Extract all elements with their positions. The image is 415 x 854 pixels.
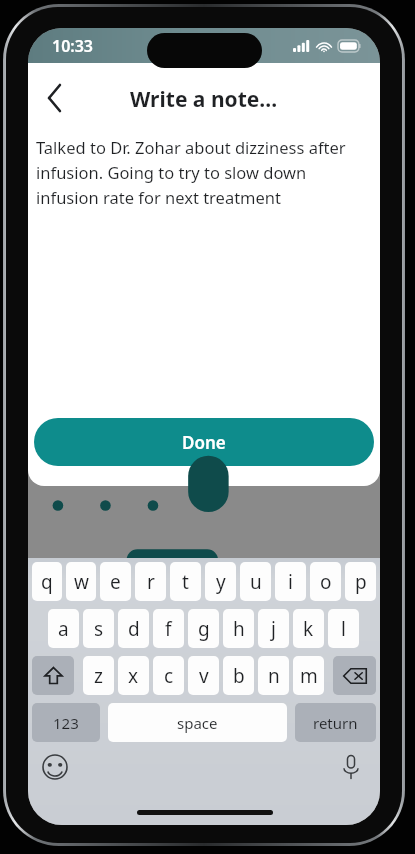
staticText: o <box>320 569 332 595</box>
button[interactable]: t <box>170 562 201 601</box>
staticText: w <box>74 569 89 595</box>
button[interactable]: x <box>118 656 149 695</box>
staticText: b <box>233 663 245 689</box>
button[interactable]: f <box>153 609 184 648</box>
button[interactable]: l <box>328 609 359 648</box>
staticText: y <box>216 569 226 595</box>
button[interactable]: u <box>240 562 271 601</box>
staticText: c <box>164 663 174 689</box>
button[interactable]: d <box>118 609 149 648</box>
staticText: i <box>288 569 293 595</box>
staticText: v <box>199 663 209 689</box>
button[interactable]: j <box>258 609 289 648</box>
staticText: Done <box>182 431 226 454</box>
button[interactable]: Shift <box>32 656 74 695</box>
button[interactable]: m <box>293 656 324 695</box>
button[interactable]: q <box>32 562 62 601</box>
staticText: e <box>110 569 121 595</box>
staticText: p <box>355 569 367 595</box>
button[interactable]: b <box>223 656 254 695</box>
button[interactable]: i <box>275 562 306 601</box>
staticText: g <box>198 616 210 642</box>
staticText: u <box>250 569 262 595</box>
button[interactable]: h <box>223 609 254 648</box>
button[interactable]: y <box>205 562 236 601</box>
button[interactable]: Dictate <box>334 750 368 784</box>
staticText: 123 <box>53 713 79 733</box>
staticText: m <box>300 663 318 689</box>
staticText: h <box>233 616 245 642</box>
button[interactable]: z <box>83 656 114 695</box>
button[interactable]: 123 <box>32 703 100 742</box>
button[interactable]: k <box>293 609 324 648</box>
button[interactable]: s <box>83 609 114 648</box>
button[interactable]: Emoji <box>38 750 72 784</box>
staticText: j <box>271 616 276 642</box>
button[interactable]: g <box>188 609 219 648</box>
staticText: n <box>268 663 280 689</box>
staticText: Write a note... <box>130 85 278 114</box>
button[interactable]: c <box>153 656 184 695</box>
button[interactable]: v <box>188 656 219 695</box>
staticText: t <box>182 569 189 595</box>
staticText: 10:33 <box>52 35 94 57</box>
staticText: Talked to Dr. Zohar about dizziness afte… <box>36 136 372 208</box>
button[interactable]: Back <box>32 76 76 120</box>
button[interactable]: Backspace <box>333 656 376 695</box>
button[interactable]: n <box>258 656 289 695</box>
staticText: d <box>128 616 140 642</box>
staticText: l <box>341 616 346 642</box>
button[interactable]: o <box>310 562 341 601</box>
button[interactable]: space <box>108 703 287 742</box>
staticText: k <box>303 616 314 642</box>
button[interactable]: a <box>48 609 79 648</box>
staticText: r <box>147 569 155 595</box>
staticText: space <box>177 713 218 733</box>
button[interactable]: w <box>66 562 96 601</box>
staticText: x <box>128 663 139 689</box>
button[interactable]: r <box>135 562 166 601</box>
staticText: q <box>41 569 53 595</box>
button[interactable]: Done <box>34 418 374 466</box>
button[interactable]: p <box>345 562 376 601</box>
staticText: return <box>313 713 358 733</box>
button[interactable]: e <box>100 562 131 601</box>
staticText: f <box>165 616 172 642</box>
staticText: z <box>94 663 103 689</box>
button[interactable]: return <box>295 703 376 742</box>
staticText: s <box>94 616 104 642</box>
staticText: a <box>58 616 69 642</box>
